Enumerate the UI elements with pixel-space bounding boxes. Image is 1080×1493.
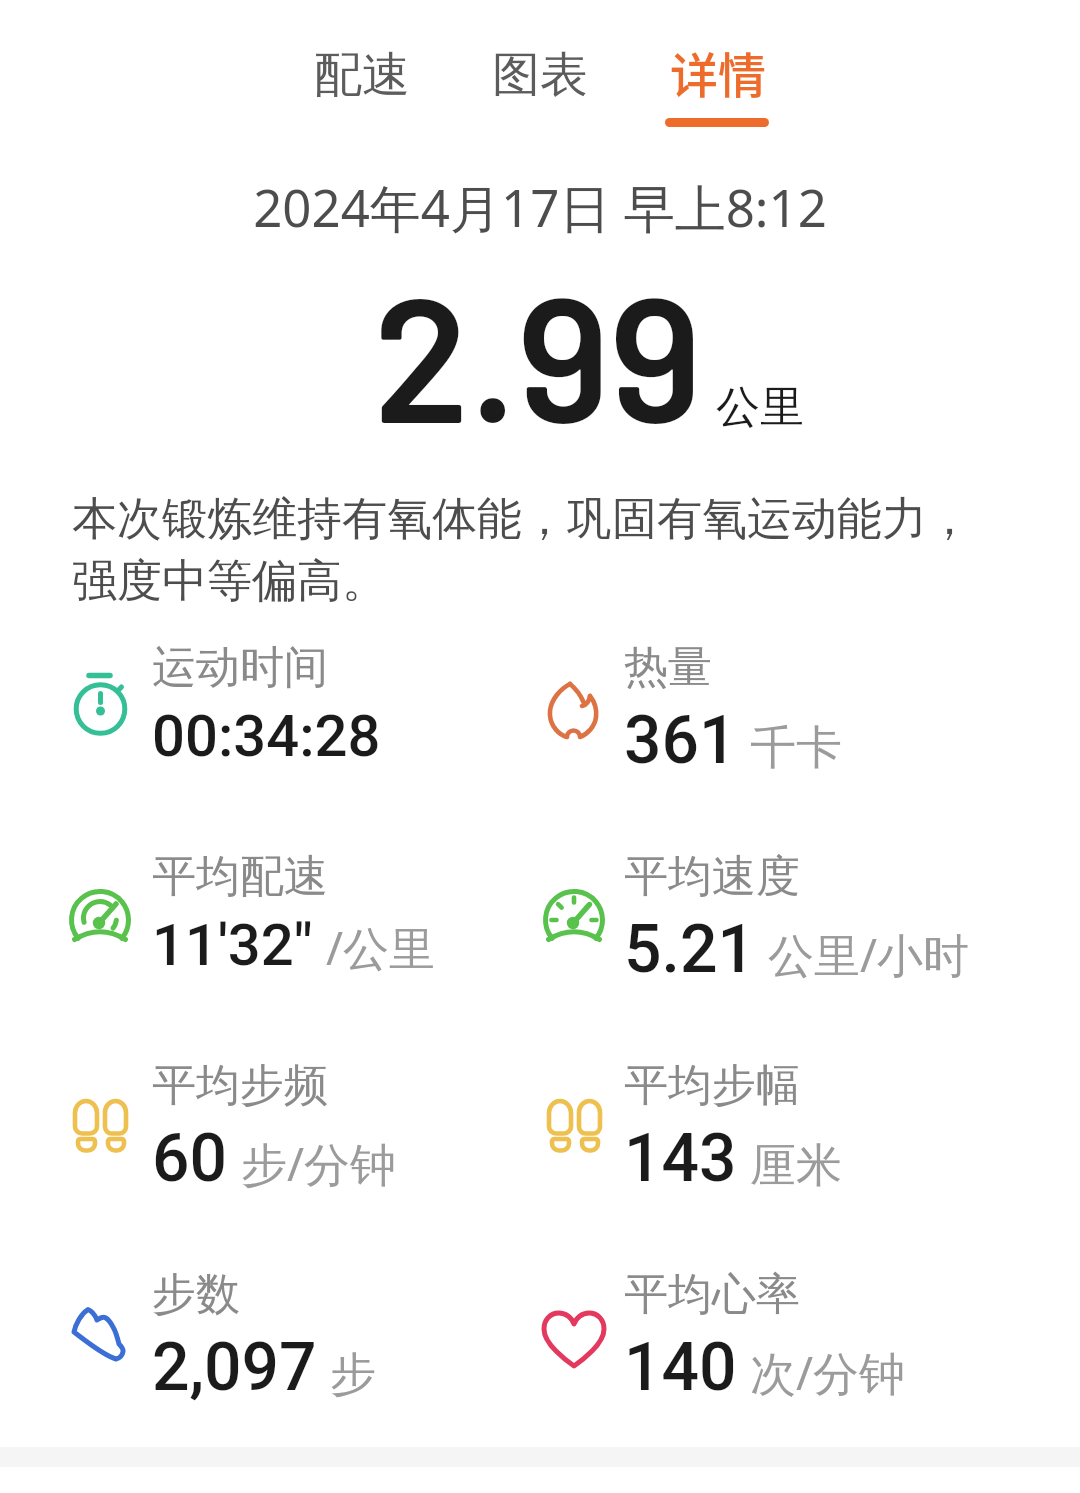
- staticText: 平均配速: [152, 849, 328, 904]
- staticText: 千卡: [750, 719, 842, 777]
- button[interactable]: 配速: [314, 45, 410, 105]
- button[interactable]: 平均步频: [0, 1022, 536, 1231]
- staticText: 平均速度: [624, 849, 800, 904]
- staticText: 143: [624, 1120, 737, 1197]
- staticText: /公里: [326, 916, 436, 979]
- staticText: 5.21: [624, 911, 755, 988]
- staticText: 步/分钟: [241, 1132, 397, 1195]
- staticText: 2.99: [373, 248, 702, 458]
- staticText: 平均步幅: [624, 1058, 800, 1113]
- staticText: 本次锻炼维持有氧体能，巩固有氧运动能力， 强度中等偏高。: [72, 491, 972, 610]
- staticText: 公里/小时: [768, 923, 970, 986]
- staticText: 热量: [624, 640, 712, 695]
- button[interactable]: 平均步幅: [536, 1022, 1080, 1231]
- button[interactable]: 平均配速: [0, 813, 536, 1022]
- staticText: 2,097: [152, 1329, 317, 1406]
- staticText: 平均步频: [152, 1058, 328, 1113]
- button[interactable]: 详情: [670, 37, 767, 107]
- staticText: 平均心率: [624, 1267, 800, 1322]
- staticText: 步: [330, 1346, 376, 1404]
- staticText: 60: [152, 1120, 228, 1197]
- staticText: 361: [624, 702, 737, 779]
- button[interactable]: 平均心率: [536, 1231, 1080, 1440]
- staticText: 步数: [152, 1267, 240, 1322]
- staticText: 公里: [716, 380, 804, 435]
- staticText: 次/分钟: [750, 1341, 906, 1404]
- button[interactable]: 热量: [536, 604, 1080, 813]
- button[interactable]: 运动时间: [0, 604, 536, 813]
- staticText: 运动时间: [152, 640, 328, 695]
- staticText: 00:34:28: [152, 702, 381, 770]
- button[interactable]: 平均速度: [536, 813, 1080, 1022]
- button[interactable]: 图表: [492, 45, 588, 105]
- staticText: 2024年4月17日 早上8:12: [0, 172, 1080, 242]
- staticText: 140: [624, 1329, 737, 1406]
- button[interactable]: 步数: [0, 1231, 536, 1440]
- staticText: 11'32": [152, 911, 313, 979]
- staticText: 厘米: [750, 1137, 842, 1195]
